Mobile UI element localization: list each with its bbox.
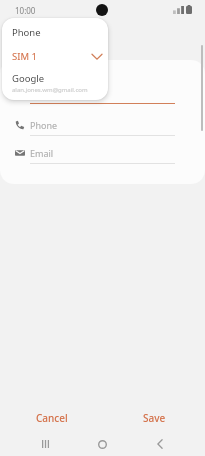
button[interactable]: SIM 1 xyxy=(2,44,108,68)
button[interactable]: Recent apps xyxy=(34,432,58,456)
staticText: 10:00 xyxy=(15,5,36,16)
button[interactable]: Phone xyxy=(0,112,205,140)
staticText: SIM 1 xyxy=(12,50,37,63)
staticText: Cancel xyxy=(36,411,68,425)
button[interactable]: Home xyxy=(90,432,114,456)
staticText: Email xyxy=(30,147,54,159)
staticText: Phone xyxy=(30,119,58,131)
staticText: alan.jones.wm@gmail.com xyxy=(12,86,88,94)
button[interactable]: Google xyxy=(2,68,108,98)
button[interactable]: Cancel xyxy=(0,406,103,430)
button[interactable]: Save xyxy=(103,406,205,430)
staticText: Google xyxy=(12,72,45,85)
button[interactable]: Back xyxy=(148,432,172,456)
staticText: Phone xyxy=(12,26,41,39)
staticText: Save xyxy=(143,411,166,425)
button[interactable]: Phone xyxy=(2,20,108,44)
button[interactable]: Email xyxy=(0,140,205,168)
